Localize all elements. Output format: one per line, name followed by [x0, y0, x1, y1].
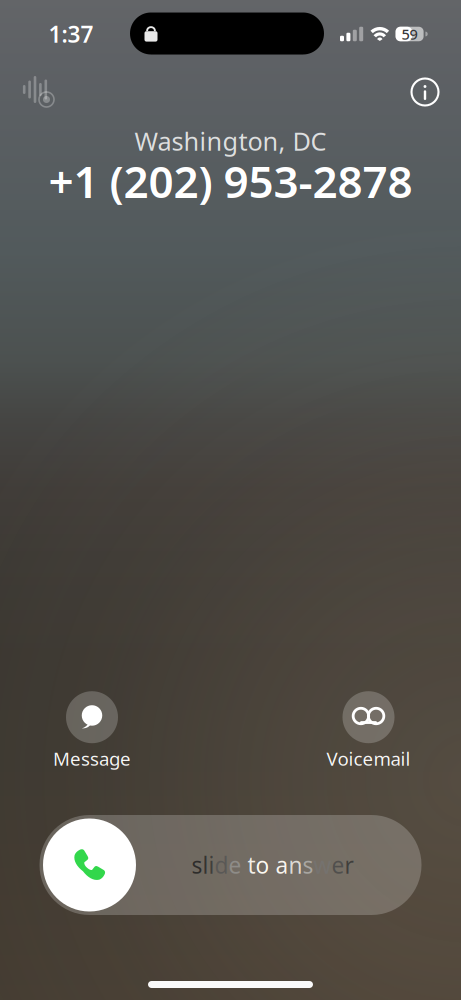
- staticText: i: [208, 850, 214, 880]
- staticText: [241, 850, 247, 880]
- staticText: n: [288, 850, 302, 880]
- staticText: 1:37: [48, 19, 93, 49]
- staticText: +1 (202) 953-2878: [48, 152, 412, 210]
- staticText: t: [247, 850, 255, 880]
- staticText: l: [202, 850, 208, 880]
- staticText: a: [275, 850, 288, 880]
- staticText: o: [255, 850, 269, 880]
- staticText: w: [313, 850, 331, 880]
- button[interactable]: slide to answer: [0, 815, 461, 915]
- staticText: Message: [53, 746, 131, 771]
- button[interactable]: Voicemail: [276, 691, 461, 771]
- staticText: Washington, DC: [134, 124, 326, 158]
- button[interactable]: Call details: [401, 68, 449, 116]
- button[interactable]: Message: [0, 691, 184, 771]
- staticText: 59: [402, 24, 418, 44]
- staticText: d: [214, 850, 228, 880]
- staticText: Voicemail: [326, 746, 410, 771]
- staticText: s: [302, 850, 313, 880]
- staticText: r: [344, 850, 353, 880]
- staticText: e: [331, 850, 344, 880]
- staticText: e: [228, 850, 241, 880]
- staticText: s: [191, 850, 202, 880]
